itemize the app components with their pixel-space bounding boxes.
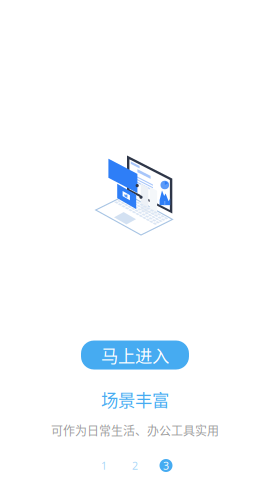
- button[interactable]: 马上进入: [81, 340, 189, 369]
- staticText: 2: [132, 458, 138, 473]
- staticText: 场景丰富: [101, 386, 169, 412]
- staticText: 1: [101, 458, 107, 473]
- staticText: 3: [163, 458, 169, 473]
- staticText: 马上进入: [101, 342, 169, 368]
- staticText: 可作为日常生活、办公工具实用: [51, 422, 219, 439]
